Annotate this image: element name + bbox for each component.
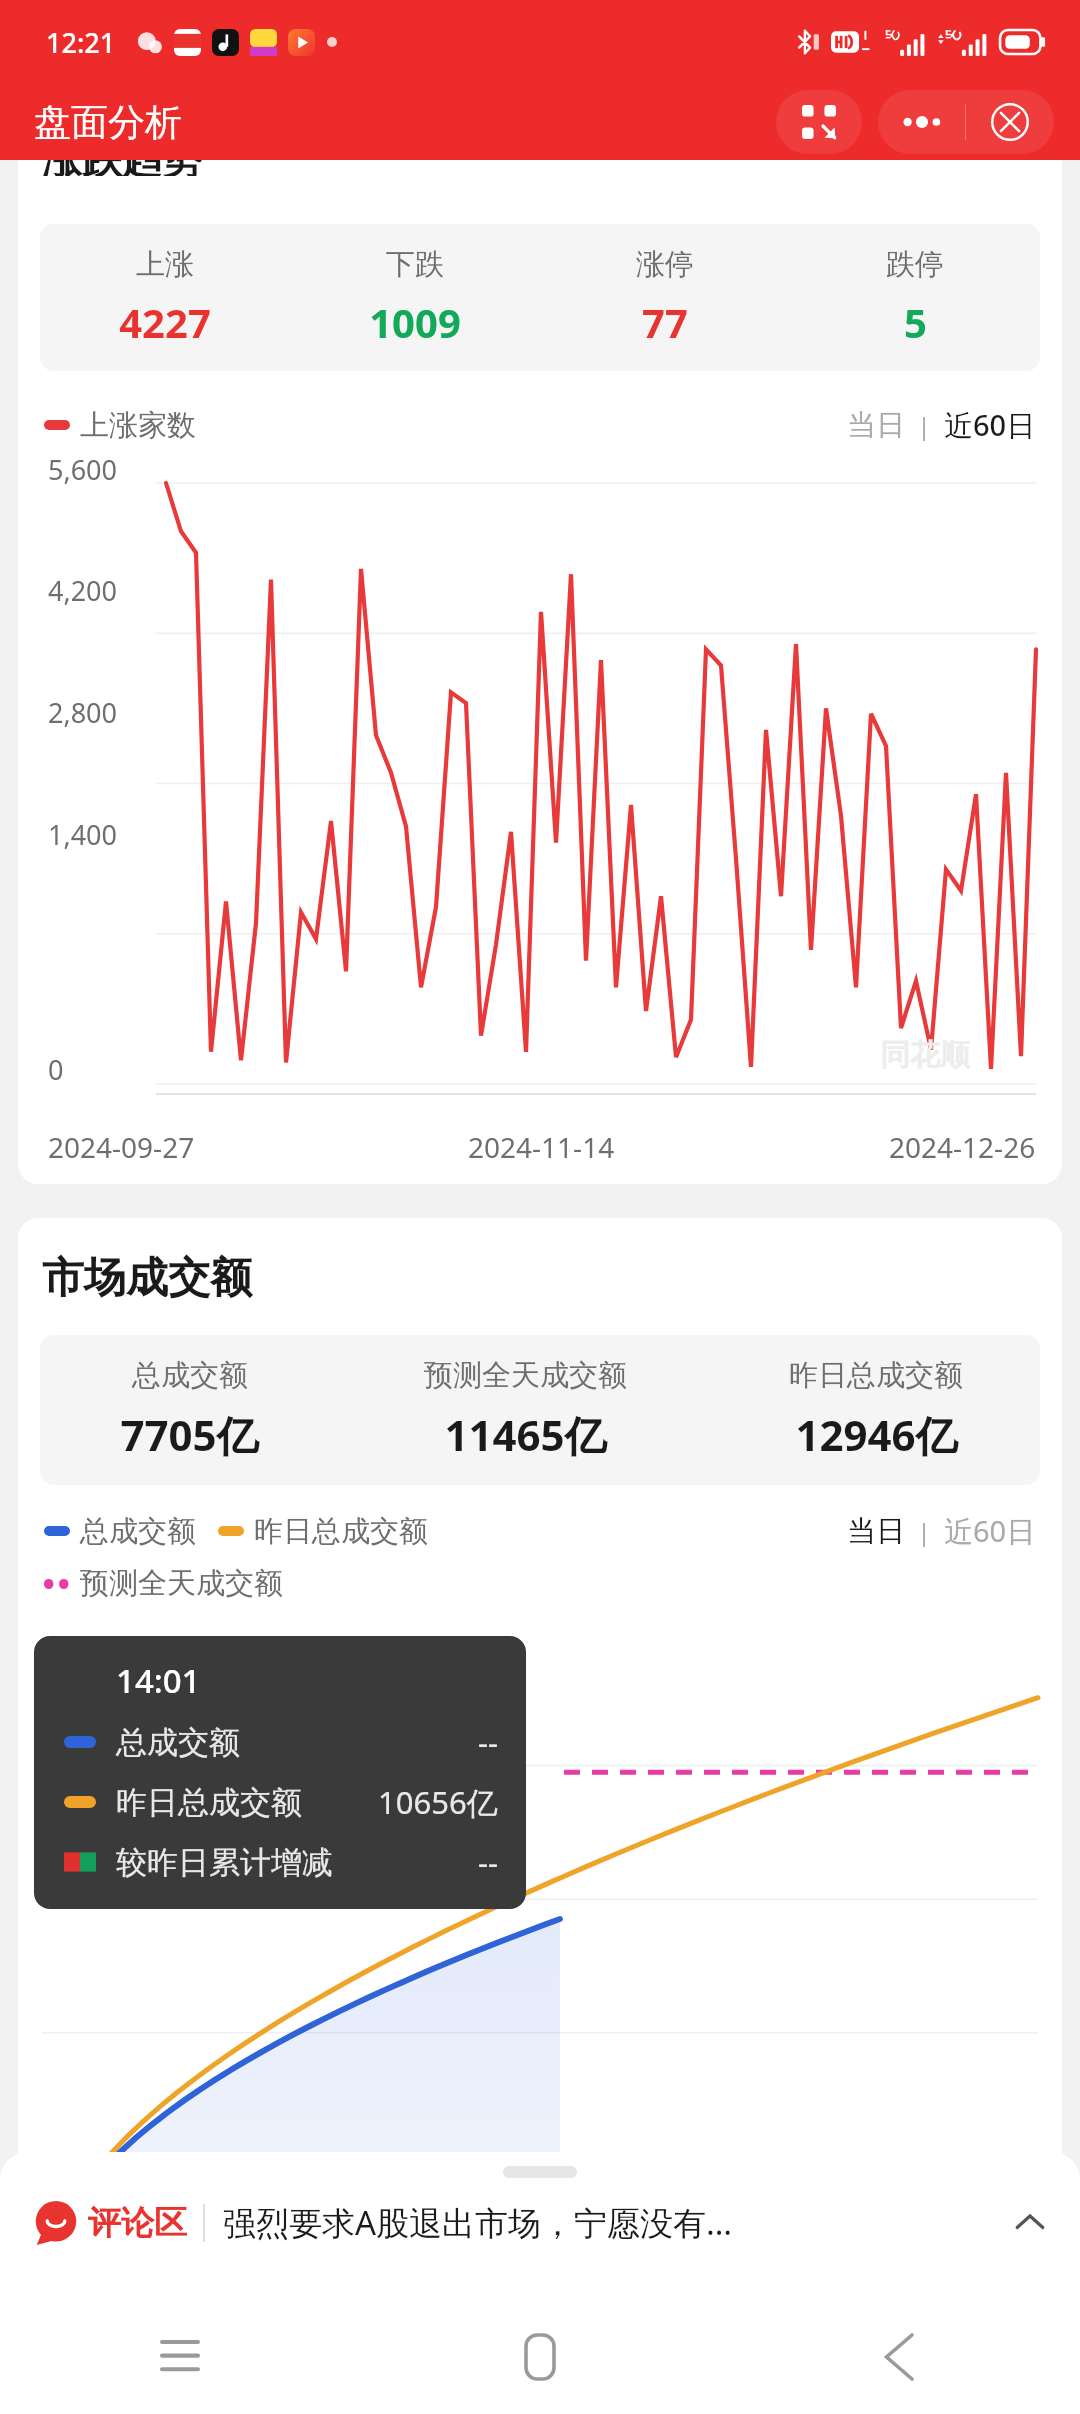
staticText: 盘面分析 [34,99,182,146]
staticText: 0 [48,1051,64,1088]
staticText: 3500亿 [44,2236,137,2274]
staticText: 近60日 [944,405,1036,445]
button[interactable]: 关闭 [966,90,1054,154]
staticText: 昨日总成交额 [254,1513,428,1550]
staticText: | [905,409,944,442]
staticText: 2024-12-26 [889,1128,1036,1166]
button[interactable]: 小程序 [776,90,862,154]
button[interactable]: 近60日 [944,1511,1036,1551]
staticText: 2,800 [48,694,118,731]
other: 展开 [1014,2207,1046,2239]
staticText: 近60日 [944,1511,1036,1551]
button[interactable]: 评论区 [0,2152,1080,2300]
staticText: 昨日总成交额 [789,1357,963,1394]
staticText: 1,400 [48,816,118,853]
staticText: 市场成交额 [42,1252,252,1305]
button[interactable]: 当日 [847,407,905,444]
staticText: -- [478,1841,498,1883]
button[interactable]: 当日 [847,1513,905,1550]
staticText: 下跌 [386,246,444,283]
staticText: 5,600 [48,451,118,488]
staticText: | [905,1515,944,1548]
staticText: 7705亿 [120,1406,259,1463]
staticText: 当日 [847,407,905,444]
button[interactable]: 最近任务 [0,2300,360,2414]
staticText: 总成交额 [132,1357,248,1394]
staticText: 预测全天成交额 [80,1565,283,1602]
staticText: 涨跌趋势 [42,160,202,176]
staticText: 预测全天成交额 [424,1357,627,1394]
staticText: 4,200 [48,572,118,609]
staticText: 1009 [369,295,461,349]
staticText: 跌停 [886,246,944,283]
staticText: 昨日总成交额 [116,1783,302,1822]
staticText: 较昨日累计增减 [116,1843,333,1882]
staticText: 10656亿 [378,1781,498,1823]
staticText: 11465亿 [444,1406,607,1463]
staticText: 总成交额 [116,1723,240,1762]
staticText: 评论区 [88,2202,187,2244]
staticText: 总成交额 [80,1513,196,1550]
button[interactable]: 近60日 [944,405,1036,445]
staticText: 12:21 [46,24,116,61]
staticText: 上涨家数 [80,407,196,444]
staticText: 2024-11-14 [468,1128,615,1166]
staticText: 5 [904,295,927,349]
button[interactable]: 返回 [720,2300,1080,2414]
staticText: 上涨 [136,246,194,283]
button[interactable]: 主页 [360,2300,720,2414]
button[interactable]: 更多 [878,90,965,154]
staticText: 同花顺 [880,1036,970,1074]
staticText: 强烈要求A股退出市场，宁愿没有… [223,2200,733,2245]
staticText: 12946亿 [795,1406,958,1463]
staticText: 14:01 [116,1658,201,1703]
staticText: 4227 [119,295,211,349]
staticText: 2024-09-27 [48,1128,195,1166]
staticText: 涨停 [636,246,694,283]
staticText: 当日 [847,1513,905,1550]
staticText: 77 [642,295,688,349]
staticText: -- [478,1721,498,1763]
